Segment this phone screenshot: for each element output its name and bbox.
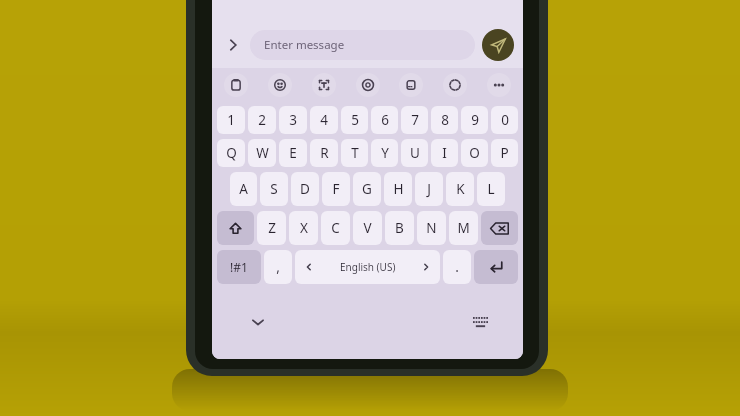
staticText: , bbox=[276, 258, 280, 276]
button[interactable]: English (US) bbox=[295, 250, 440, 284]
staticText: 0 bbox=[501, 111, 509, 129]
staticText: Enter message bbox=[264, 37, 345, 53]
button[interactable]: A bbox=[230, 172, 257, 206]
button[interactable]: L bbox=[477, 172, 505, 206]
button[interactable]: More options bbox=[487, 73, 511, 97]
staticText: O bbox=[469, 144, 480, 162]
staticText: 7 bbox=[411, 111, 419, 129]
button[interactable]: !#1 bbox=[217, 250, 261, 284]
staticText: D bbox=[300, 180, 310, 198]
staticText: N bbox=[426, 219, 437, 237]
staticText: 3 bbox=[289, 111, 297, 129]
button[interactable]: K bbox=[446, 172, 474, 206]
button[interactable]: P bbox=[491, 139, 518, 167]
button[interactable]: X bbox=[289, 211, 318, 245]
button[interactable]: R bbox=[310, 139, 338, 167]
staticText: J bbox=[427, 180, 431, 198]
staticText: 6 bbox=[381, 111, 389, 129]
button[interactable]: Clipboard bbox=[224, 73, 248, 97]
button[interactable]: Z bbox=[257, 211, 286, 245]
button[interactable]: Send bbox=[482, 29, 514, 61]
button[interactable]: 5 bbox=[341, 106, 368, 134]
button[interactable]: Shift bbox=[217, 211, 254, 245]
button[interactable]: 7 bbox=[401, 106, 428, 134]
staticText: M bbox=[457, 219, 470, 237]
button[interactable]: 1 bbox=[217, 106, 245, 134]
button[interactable]: Y bbox=[371, 139, 398, 167]
staticText: B bbox=[395, 219, 404, 237]
button[interactable]: 9 bbox=[461, 106, 488, 134]
button[interactable]: E bbox=[279, 139, 307, 167]
staticText: W bbox=[256, 144, 269, 162]
button[interactable]: Enter message bbox=[250, 30, 475, 60]
staticText: 4 bbox=[320, 111, 328, 129]
button[interactable]: W bbox=[248, 139, 276, 167]
button[interactable]: Backspace bbox=[481, 211, 518, 245]
staticText: 1 bbox=[227, 111, 235, 129]
staticText: H bbox=[393, 180, 404, 198]
button[interactable]: M bbox=[449, 211, 478, 245]
staticText: S bbox=[270, 180, 278, 198]
staticText: X bbox=[300, 219, 308, 237]
staticText: K bbox=[456, 180, 465, 198]
staticText: 5 bbox=[351, 111, 359, 129]
button[interactable]: T bbox=[341, 139, 368, 167]
staticText: Z bbox=[268, 219, 276, 237]
staticText: 8 bbox=[441, 111, 449, 129]
button[interactable]: V bbox=[353, 211, 382, 245]
staticText: A bbox=[239, 180, 248, 198]
staticText: 9 bbox=[471, 111, 479, 129]
staticText: . bbox=[455, 258, 459, 276]
button[interactable]: Keyboard layout bbox=[469, 310, 493, 334]
button[interactable]: H bbox=[384, 172, 412, 206]
button[interactable]: O bbox=[461, 139, 488, 167]
button[interactable]: Enter bbox=[474, 250, 518, 284]
staticText: English (US) bbox=[340, 260, 396, 274]
staticText: Y bbox=[381, 144, 389, 162]
button[interactable]: B bbox=[385, 211, 414, 245]
button[interactable]: J bbox=[415, 172, 443, 206]
button[interactable]: 6 bbox=[371, 106, 398, 134]
staticText: E bbox=[289, 144, 297, 162]
staticText: T bbox=[351, 144, 359, 162]
button[interactable]: Handwriting bbox=[443, 73, 467, 97]
button[interactable]: 8 bbox=[431, 106, 458, 134]
button[interactable]: U bbox=[401, 139, 428, 167]
button[interactable]: N bbox=[417, 211, 446, 245]
staticText: 2 bbox=[258, 111, 266, 129]
button[interactable]: C bbox=[321, 211, 350, 245]
button[interactable]: D bbox=[291, 172, 319, 206]
staticText: V bbox=[363, 219, 372, 237]
staticText: F bbox=[332, 180, 340, 198]
button[interactable]: . bbox=[443, 250, 471, 284]
button[interactable]: G bbox=[353, 172, 381, 206]
staticText: P bbox=[500, 144, 509, 162]
button[interactable]: I bbox=[431, 139, 458, 167]
staticText: !#1 bbox=[230, 259, 248, 275]
button[interactable]: Translate bbox=[399, 73, 423, 97]
staticText: C bbox=[331, 219, 340, 237]
button[interactable]: 2 bbox=[248, 106, 276, 134]
button[interactable]: , bbox=[264, 250, 292, 284]
button[interactable]: 4 bbox=[310, 106, 338, 134]
button[interactable]: Settings bbox=[356, 73, 380, 97]
button[interactable]: Q bbox=[217, 139, 245, 167]
button[interactable]: S bbox=[260, 172, 288, 206]
button[interactable]: Hide keyboard bbox=[246, 310, 270, 334]
staticText: I bbox=[442, 144, 447, 162]
button[interactable]: Expand bbox=[222, 34, 244, 56]
staticText: Q bbox=[226, 144, 237, 162]
staticText: G bbox=[362, 180, 372, 198]
staticText: L bbox=[487, 180, 495, 198]
button[interactable]: F bbox=[322, 172, 350, 206]
staticText: U bbox=[410, 144, 420, 162]
button[interactable]: Text recognition bbox=[312, 73, 336, 97]
button[interactable]: 3 bbox=[279, 106, 307, 134]
staticText: R bbox=[320, 144, 329, 162]
button[interactable]: 0 bbox=[491, 106, 518, 134]
button[interactable]: Emoji bbox=[268, 73, 292, 97]
